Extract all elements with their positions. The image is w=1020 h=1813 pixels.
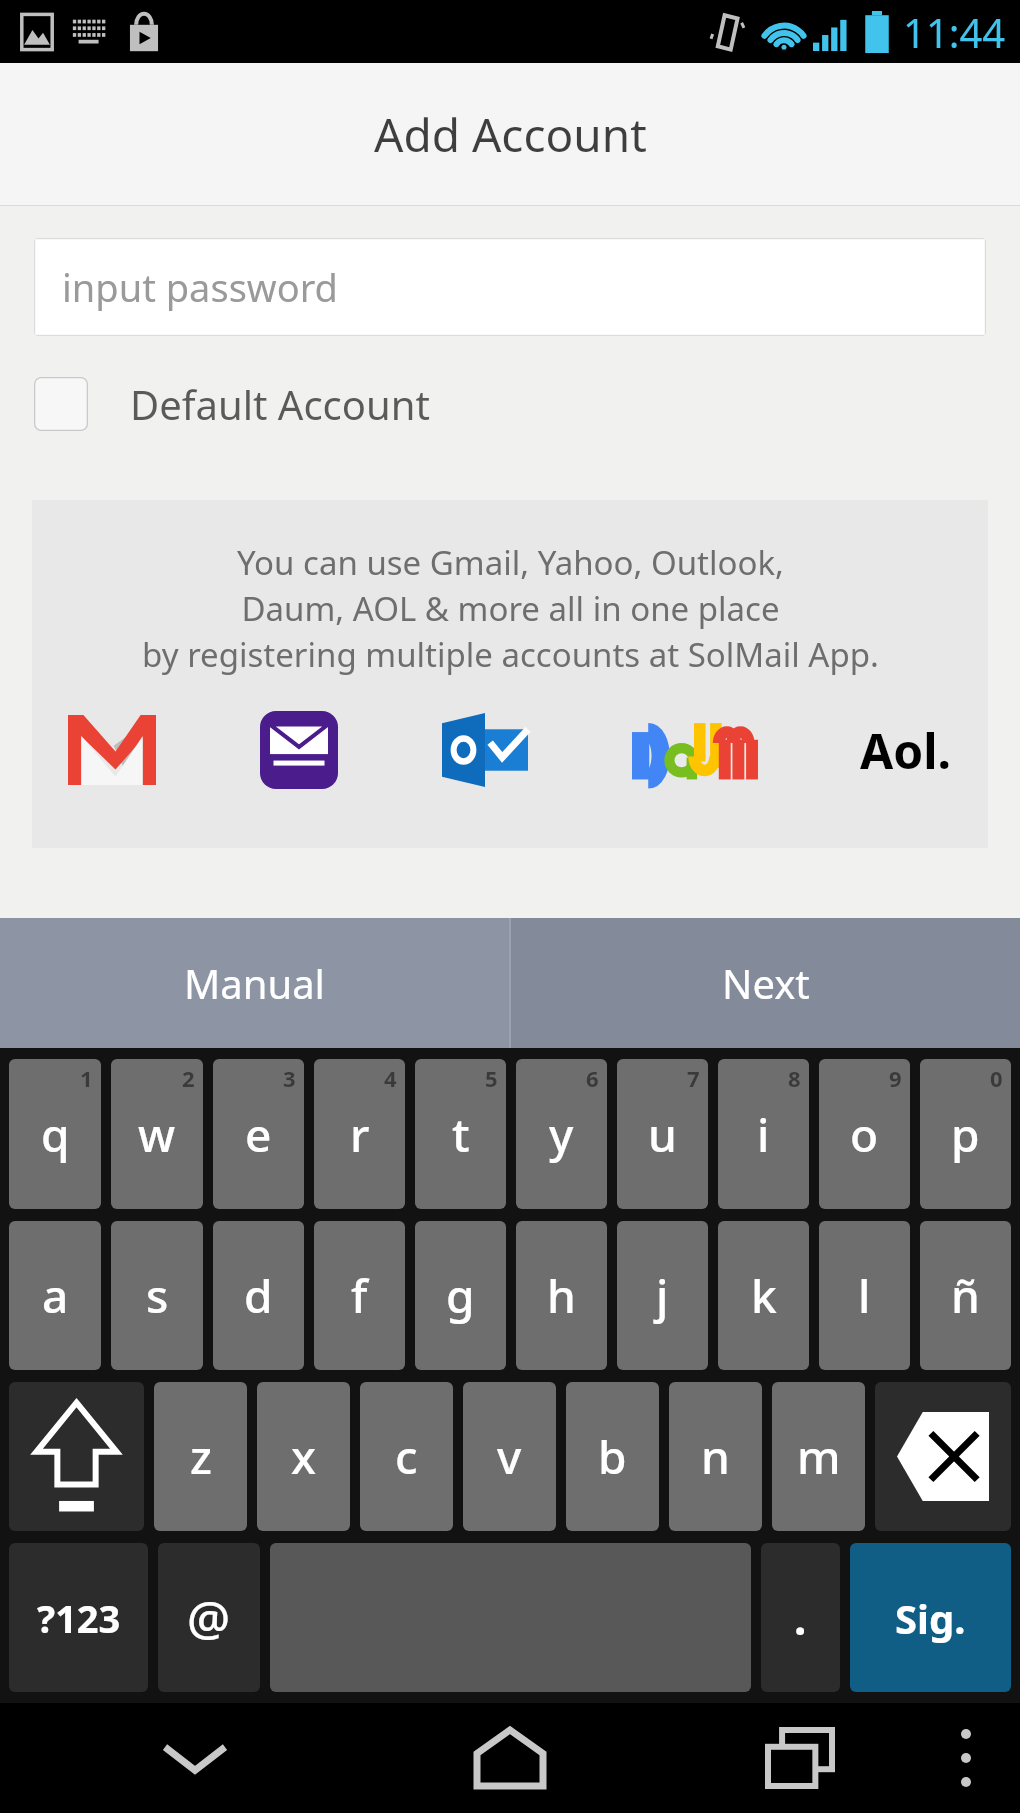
button[interactable]: ñ: [920, 1221, 1011, 1370]
staticText: o: [850, 1103, 879, 1166]
staticText: w: [138, 1103, 176, 1166]
staticText: ñ: [951, 1264, 980, 1327]
button[interactable]: input password: [34, 238, 986, 336]
staticText: x: [291, 1425, 316, 1488]
staticText: g: [446, 1264, 475, 1327]
button[interactable]: x: [257, 1382, 350, 1531]
button[interactable]: 1: [9, 1059, 101, 1209]
staticText: v: [497, 1425, 522, 1488]
staticText: 6: [586, 1063, 599, 1093]
staticText: Default Account: [130, 377, 430, 431]
staticText: Sig.: [895, 1591, 966, 1645]
staticText: a: [42, 1264, 69, 1327]
staticText: k: [751, 1264, 777, 1327]
staticText: z: [190, 1425, 212, 1488]
staticText: 3: [283, 1063, 296, 1093]
staticText: i: [757, 1103, 770, 1166]
button[interactable]: More options: [926, 1718, 1006, 1798]
staticText: h: [547, 1264, 576, 1327]
staticText: Next: [722, 956, 810, 1010]
button[interactable]: Default Account: [34, 366, 986, 442]
button[interactable]: 2: [111, 1059, 203, 1209]
button[interactable]: ?123: [9, 1543, 148, 1692]
staticText: l: [858, 1264, 871, 1327]
button[interactable]: c: [360, 1382, 453, 1531]
staticText: 8: [788, 1063, 801, 1093]
staticText: .: [794, 1588, 807, 1648]
staticText: ?123: [37, 1592, 121, 1644]
button[interactable]: d: [213, 1221, 304, 1370]
button[interactable]: Shift: [9, 1382, 144, 1531]
staticText: 9: [889, 1063, 902, 1093]
staticText: m: [797, 1425, 841, 1488]
staticText: j: [656, 1264, 669, 1327]
staticText: e: [245, 1103, 272, 1166]
button[interactable]: a: [9, 1221, 101, 1370]
staticText: 5: [485, 1063, 498, 1093]
staticText: u: [648, 1103, 677, 1166]
staticText: @: [187, 1585, 231, 1650]
button[interactable]: 6: [516, 1059, 607, 1209]
button[interactable]: z: [154, 1382, 247, 1531]
button[interactable]: g: [415, 1221, 506, 1370]
button[interactable]: j: [617, 1221, 708, 1370]
staticText: Aol.: [860, 718, 952, 783]
staticText: Manual: [184, 956, 325, 1010]
button[interactable]: 9: [819, 1059, 910, 1209]
staticText: r: [350, 1103, 370, 1166]
button[interactable]: v: [463, 1382, 556, 1531]
staticText: 11:44: [903, 5, 1006, 59]
staticText: 0: [990, 1063, 1003, 1093]
button[interactable]: Next: [511, 918, 1020, 1048]
button[interactable]: 8: [718, 1059, 809, 1209]
button[interactable]: Sig.: [850, 1543, 1011, 1692]
staticText: s: [146, 1264, 169, 1327]
button[interactable]: n: [669, 1382, 762, 1531]
button[interactable]: 0: [920, 1059, 1011, 1209]
button[interactable]: 3: [213, 1059, 304, 1209]
button[interactable]: 5: [415, 1059, 506, 1209]
staticText: q: [41, 1103, 70, 1166]
button[interactable]: 4: [314, 1059, 405, 1209]
button[interactable]: Hide keyboard: [150, 1713, 240, 1803]
staticText: 1: [80, 1063, 93, 1093]
button[interactable]: .: [761, 1543, 840, 1692]
staticText: You can use Gmail, Yahoo, Outlook, Daum,…: [142, 540, 879, 677]
staticText: Add Account: [374, 103, 647, 166]
staticText: input password: [62, 261, 338, 313]
button[interactable]: f: [314, 1221, 405, 1370]
button[interactable]: m: [772, 1382, 865, 1531]
button[interactable]: l: [819, 1221, 910, 1370]
staticText: y: [549, 1103, 574, 1166]
button[interactable]: 7: [617, 1059, 708, 1209]
button[interactable]: Backspace: [875, 1382, 1011, 1531]
button[interactable]: b: [566, 1382, 659, 1531]
button[interactable]: h: [516, 1221, 607, 1370]
staticText: f: [351, 1264, 368, 1327]
staticText: 2: [182, 1063, 195, 1093]
staticText: 4: [384, 1063, 397, 1093]
staticText: n: [701, 1425, 730, 1488]
staticText: d: [244, 1264, 273, 1327]
staticText: c: [395, 1425, 418, 1488]
button[interactable]: k: [718, 1221, 809, 1370]
staticText: p: [951, 1103, 980, 1166]
staticText: 7: [687, 1063, 700, 1093]
staticText: t: [452, 1103, 470, 1166]
button[interactable]: Manual: [0, 918, 509, 1048]
staticText: b: [598, 1425, 627, 1488]
button[interactable]: s: [111, 1221, 203, 1370]
button[interactable]: @: [158, 1543, 260, 1692]
button[interactable]: Recent apps: [750, 1708, 850, 1808]
button[interactable]: Home: [460, 1708, 560, 1808]
